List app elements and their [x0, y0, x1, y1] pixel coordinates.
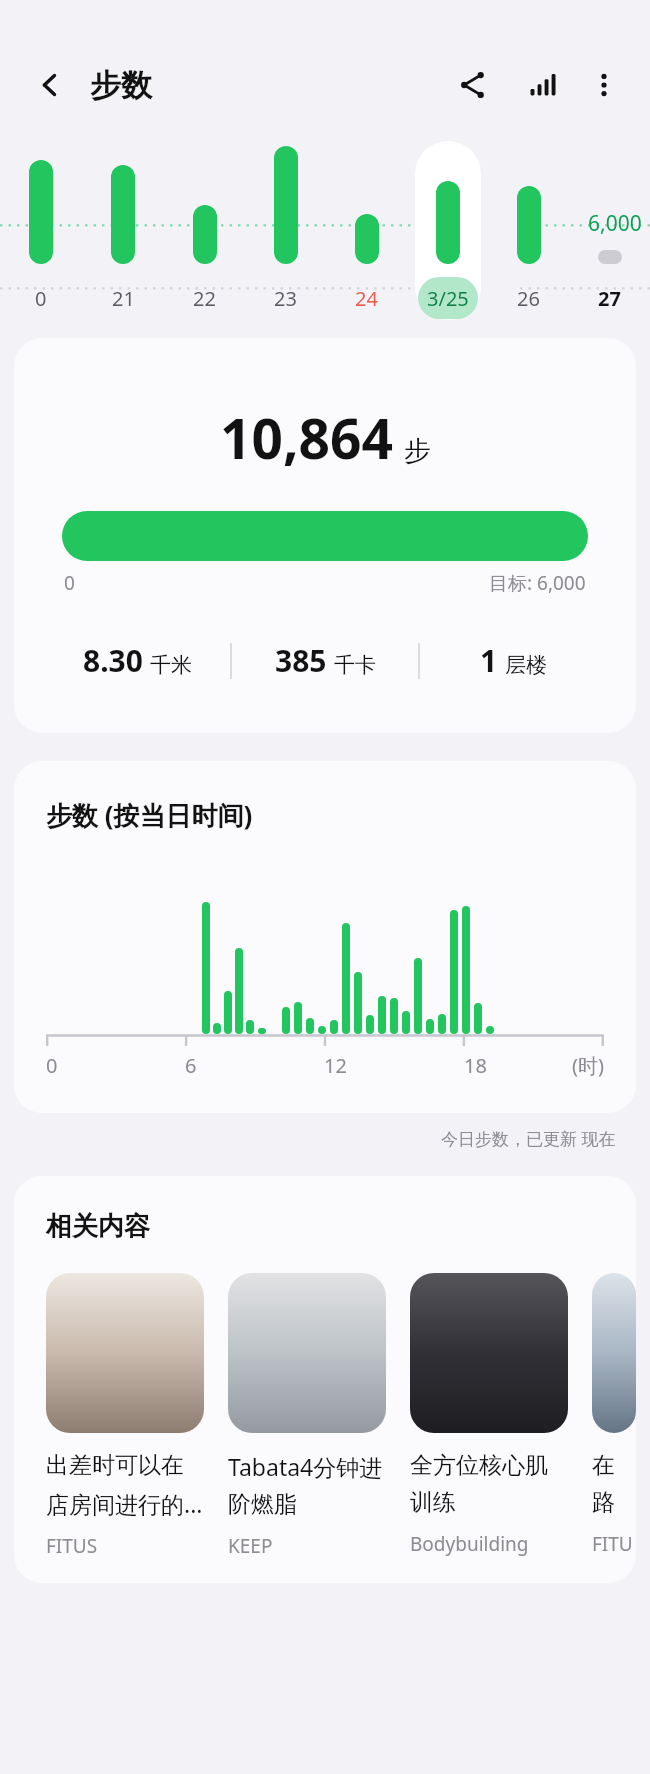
button[interactable]: 26 — [488, 125, 569, 320]
button[interactable]: 出差时可以在酒 — [46, 1273, 204, 1559]
staticText: 385 — [275, 640, 327, 681]
button[interactable]: 1 — [420, 640, 606, 681]
staticText: 10,864 — [220, 400, 393, 475]
staticText: 步数 (按当日时间) — [46, 797, 253, 833]
staticText: 相关内容 — [46, 1210, 150, 1243]
staticText: 出差时可以在酒 — [46, 1451, 204, 1480]
staticText: 26 — [517, 285, 540, 312]
staticText: 步数 — [90, 66, 152, 105]
staticText: 今日步数，已更新 现在 — [441, 1127, 616, 1150]
staticText: 阶燃脂 — [228, 1490, 297, 1519]
staticText: 千卡 — [334, 652, 376, 678]
staticText: 6 — [185, 1052, 197, 1079]
button[interactable]: 3/25 — [407, 125, 488, 320]
staticText: 0 — [35, 285, 47, 312]
staticText: (时) — [572, 1052, 604, 1079]
staticText: 路里 — [592, 1488, 636, 1517]
button[interactable]: 385 — [232, 640, 418, 681]
button[interactable]: More options — [578, 59, 630, 111]
button[interactable]: 27 — [569, 125, 650, 320]
staticText: Bodybuilding — [410, 1531, 529, 1557]
staticText: 全方位核心肌群 — [410, 1451, 568, 1480]
staticText: FITUS — [46, 1533, 98, 1559]
staticText: KEEP — [228, 1533, 273, 1559]
staticText: FITU — [592, 1531, 633, 1557]
staticText: 23 — [274, 285, 297, 312]
staticText: 18 — [464, 1052, 487, 1079]
staticText: 0 — [46, 1052, 58, 1079]
staticText: 目标: 6,000 — [489, 570, 586, 596]
staticText: 21 — [112, 285, 135, 312]
button[interactable]: 8.30 — [44, 640, 230, 681]
button[interactable]: Tabata4分钟进 — [228, 1273, 386, 1559]
staticText: 层楼 — [505, 652, 547, 678]
button[interactable]: Share — [446, 59, 498, 111]
staticText: 1 — [480, 640, 498, 681]
staticText: 训练 — [410, 1488, 456, 1517]
button[interactable]: 步数 (按当日时间) — [14, 761, 636, 1113]
staticText: 8.30 — [83, 640, 143, 681]
button[interactable]: 24 — [326, 125, 407, 320]
button[interactable]: Back — [24, 59, 76, 111]
staticText: 27 — [598, 285, 621, 312]
staticText: 12 — [324, 1052, 347, 1079]
staticText: 步 — [404, 434, 431, 468]
button[interactable]: 0 — [0, 125, 82, 320]
button[interactable]: 22 — [164, 125, 245, 320]
button[interactable]: 23 — [245, 125, 326, 320]
staticText: 在跑 — [592, 1451, 636, 1480]
button[interactable]: 21 — [82, 125, 164, 320]
button[interactable]: 在跑 — [592, 1273, 636, 1557]
staticText: 店房间进行的... — [46, 1488, 203, 1519]
staticText: 6,000 — [588, 209, 642, 238]
button[interactable]: Trends — [516, 59, 568, 111]
staticText: Tabata4分钟进 — [228, 1451, 383, 1482]
staticText: 24 — [355, 285, 378, 312]
staticText: 22 — [193, 285, 216, 312]
button[interactable]: 全方位核心肌群 — [410, 1273, 568, 1557]
button[interactable]: 10,864 — [14, 338, 636, 733]
staticText: 3/25 — [427, 285, 469, 312]
staticText: 千米 — [150, 652, 192, 678]
staticText: 0 — [64, 570, 75, 596]
